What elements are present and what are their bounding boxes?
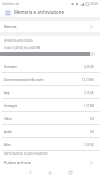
staticText: App	[4, 91, 84, 95]
button[interactable]: Immagini	[0, 99, 100, 112]
button[interactable]: Storage	[3, 8, 12, 17]
staticText: Dati memorizzati nella cache	[4, 78, 82, 82]
staticText: 12,21 MB	[82, 78, 94, 82]
staticText: MEMORIA ARCHIVIATA	[4, 39, 33, 43]
staticText: 0 B	[90, 130, 94, 134]
button[interactable]: App	[0, 86, 100, 99]
staticText: 1,57 MB	[84, 104, 94, 108]
button[interactable]: Home	[43, 167, 57, 178]
staticText: Immagini	[4, 104, 84, 108]
staticText: Memoria	[4, 25, 89, 29]
button[interactable]: Audio	[0, 125, 100, 138]
staticText: 20:30	[90, 2, 98, 6]
staticText: Firmware	[4, 65, 84, 69]
staticText: Altro	[4, 143, 84, 147]
staticText: Totale 14,00 GB, liberi 603 MB	[4, 46, 41, 50]
staticText: IMPOSTAZIONI DI ARCHIVIAZIONE	[4, 152, 48, 156]
button[interactable]: Back	[23, 167, 37, 178]
button[interactable]: Pulizia archivio	[0, 158, 100, 166]
staticText: 3,14 GB	[84, 91, 94, 95]
staticText: Video	[4, 117, 90, 121]
staticText: 0 B	[90, 117, 94, 121]
button[interactable]: Dati memorizzati nella cache	[0, 73, 100, 86]
button[interactable]: Video	[0, 112, 100, 125]
staticText: Memoria e archiviazione	[14, 9, 64, 15]
staticText: Vodafone.de	[2, 2, 20, 6]
staticText: Audio	[4, 130, 90, 134]
staticText: 4,34 GB	[84, 65, 94, 69]
staticText: Pulizia archivio	[4, 160, 89, 165]
button[interactable]: Firmware	[0, 60, 100, 73]
button[interactable]: Memoria	[0, 21, 100, 32]
staticText: 1,50 GB	[84, 143, 94, 147]
button[interactable]: Altro	[0, 138, 100, 151]
button[interactable]: Recent apps	[63, 167, 77, 178]
